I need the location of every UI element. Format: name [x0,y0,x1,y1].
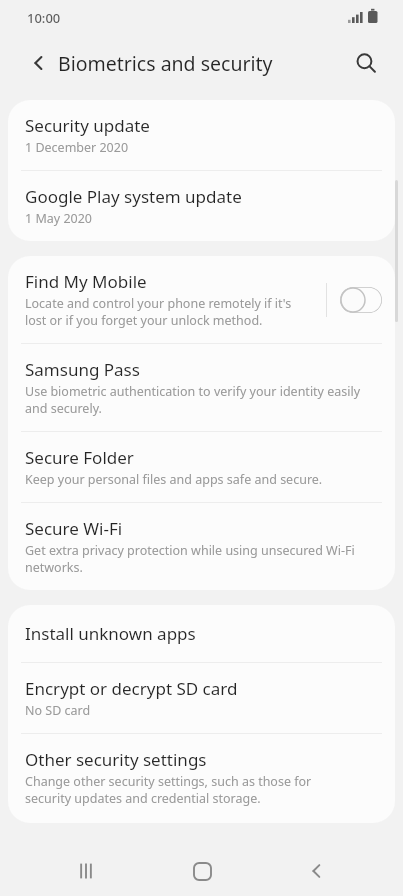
button[interactable]: Search [343,40,389,86]
staticText: Secure Folder [25,446,134,469]
staticText: Locate and control your phone remotely i… [25,295,292,329]
staticText: Find My Mobile [25,270,147,293]
button[interactable]: Secure Wi-Fi [8,503,395,590]
staticText: Samsung Pass [25,358,140,381]
staticText: Google Play system update [25,185,242,208]
staticText: Other security settings [25,748,207,771]
button[interactable]: Back [16,40,62,86]
staticText: Get extra privacy protection while using… [25,542,355,576]
staticText: Security update [25,114,150,137]
staticText: 1 December 2020 [25,139,129,156]
staticText: 10:00 [27,9,61,27]
button[interactable]: Home [173,846,231,896]
button[interactable]: Install unknown apps [8,605,395,662]
staticText: Encrypt or decrypt SD card [25,677,238,700]
staticText: Change other security settings, such as … [25,773,312,807]
button[interactable]: Google Play system update [8,171,395,241]
button[interactable]: Security update [8,100,395,170]
button[interactable]: Other security settings [8,734,395,823]
button[interactable]: Find My Mobile toggle [340,287,382,313]
button[interactable]: Secure Folder [8,432,395,502]
staticText: Keep your personal files and apps safe a… [25,471,323,488]
staticText: Biometrics and security [58,50,273,77]
staticText: 1 May 2020 [25,210,92,227]
staticText: Install unknown apps [25,622,196,645]
button[interactable]: Find My Mobile [8,256,395,343]
button[interactable]: Back [288,846,346,896]
staticText: Secure Wi-Fi [25,517,123,540]
button[interactable]: Samsung Pass [8,344,395,431]
staticText: Use biometric authentication to verify y… [25,383,361,417]
staticText: No SD card [25,702,91,719]
button[interactable]: Recent apps [57,846,115,896]
button[interactable]: Encrypt or decrypt SD card [8,663,395,733]
